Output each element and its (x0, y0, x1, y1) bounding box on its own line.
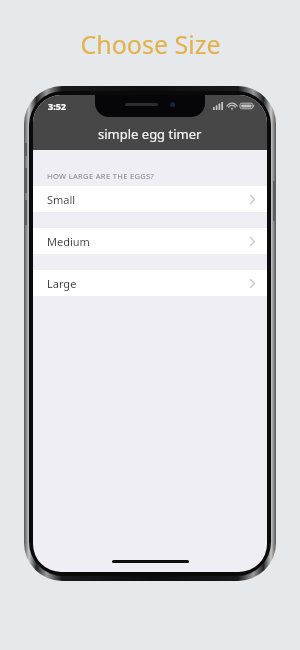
other: Wi-Fi (227, 102, 237, 110)
other: Battery (240, 102, 255, 110)
staticText: HOW LARGE ARE THE EGGS? (47, 171, 155, 181)
staticText: 3:52 (48, 100, 66, 112)
button[interactable]: Large (33, 270, 267, 296)
staticText: Large (47, 276, 77, 291)
button[interactable]: Small (33, 186, 267, 212)
button[interactable]: Medium (33, 228, 267, 254)
staticText: Choose Size (80, 27, 221, 61)
staticText: Medium (47, 234, 90, 249)
staticText: simple egg timer (98, 125, 202, 143)
other: Cellular signal (213, 102, 224, 110)
staticText: Small (47, 192, 76, 207)
